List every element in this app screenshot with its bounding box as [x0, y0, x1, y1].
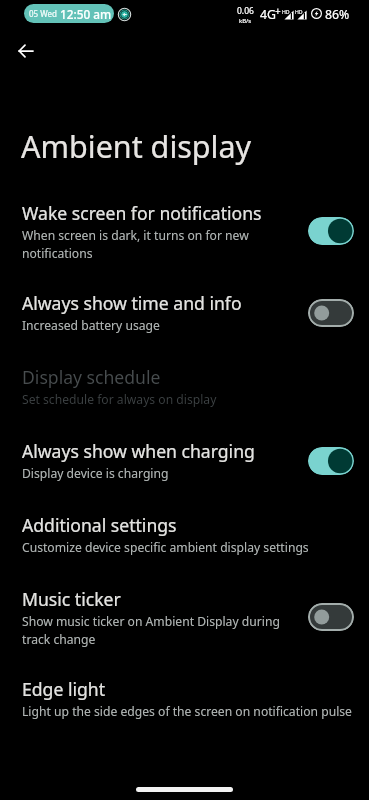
- button[interactable]: Wake screen for notifications: [0, 196, 369, 286]
- button[interactable]: Additional settings: [0, 508, 369, 582]
- staticText: HD: [282, 8, 290, 15]
- staticText: Additional settings: [22, 513, 177, 537]
- staticText: Customize device specific ambient displa…: [22, 539, 309, 556]
- staticText: Always show when charging: [22, 439, 255, 463]
- staticText: Show music ticker on Ambient Display dur…: [22, 613, 280, 648]
- button[interactable]: Navigate up: [6, 31, 46, 71]
- staticText: Increased battery usage: [22, 317, 160, 334]
- staticText: HD: [295, 8, 303, 15]
- staticText: 0.06: [237, 5, 254, 17]
- button[interactable]: Display schedule: [0, 360, 369, 434]
- button[interactable]: Always show when charging: [0, 434, 369, 508]
- button[interactable]: Music ticker: [0, 582, 369, 672]
- staticText: Set schedule for always on display: [22, 391, 217, 408]
- button[interactable]: Always show time and info: [0, 286, 369, 360]
- button[interactable]: Toggle off: [308, 603, 354, 631]
- staticText: 05 Wed: [29, 8, 57, 19]
- staticText: Wake screen for notifications: [22, 201, 262, 225]
- staticText: Edge light: [22, 677, 106, 701]
- staticText: 12:50 am: [60, 6, 112, 22]
- button[interactable]: Toggle on: [308, 217, 354, 245]
- staticText: kB/s: [239, 17, 252, 25]
- staticText: Always show time and info: [22, 291, 242, 315]
- staticText: Display schedule: [22, 365, 161, 389]
- button[interactable]: Toggle on: [308, 447, 354, 475]
- staticText: Light up the side edges of the screen on…: [22, 703, 352, 720]
- staticText: Ambient display: [21, 125, 252, 167]
- staticText: When screen is dark, it turns on for new…: [22, 227, 249, 262]
- staticText: Display device is charging: [22, 465, 169, 482]
- staticText: 4G: [260, 6, 276, 23]
- staticText: +: [275, 4, 281, 18]
- button[interactable]: Toggle off: [308, 299, 354, 327]
- button[interactable]: Edge light: [0, 672, 369, 746]
- staticText: Music ticker: [22, 587, 121, 611]
- staticText: 86%: [325, 6, 350, 23]
